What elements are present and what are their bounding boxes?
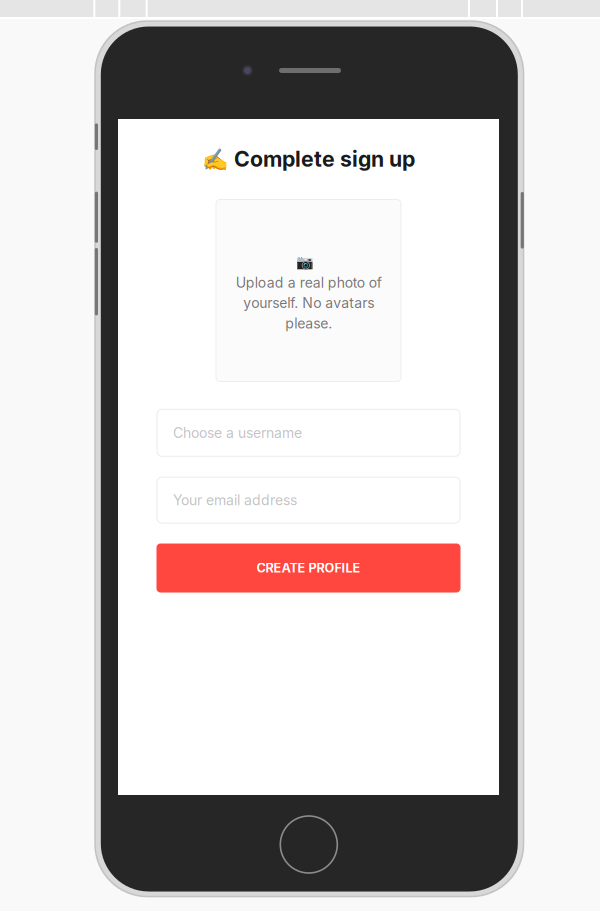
button[interactable]: 📷 [216,199,401,381]
staticText: Upload a real photo of yourself. No avat… [235,274,381,332]
button[interactable]: Choose a username [157,409,460,456]
staticText: CREATE PROFILE [256,560,360,576]
button[interactable]: Your email address [157,477,460,523]
button[interactable]: CREATE PROFILE [156,543,460,592]
staticText: 📷 [296,254,313,270]
staticText: Your email address [173,492,297,508]
staticText: Choose a username [173,424,302,441]
staticText: ✍️ Complete sign up [202,146,415,172]
